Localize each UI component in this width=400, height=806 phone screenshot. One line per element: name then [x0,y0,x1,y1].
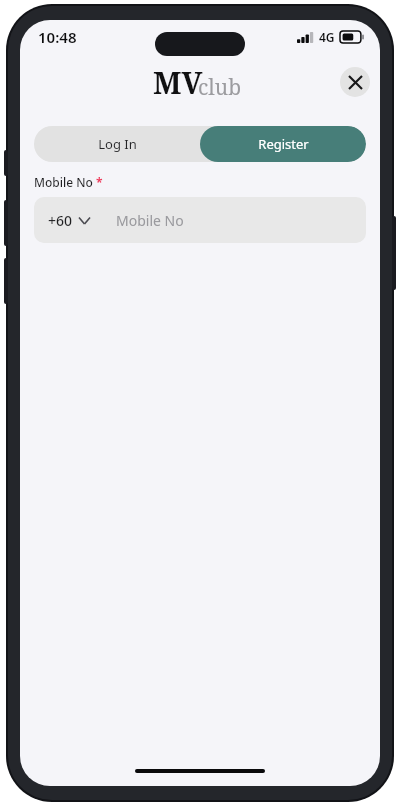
button[interactable]: Mobile No [116,197,366,243]
staticText: club [198,73,242,102]
staticText: Log In [98,135,137,153]
staticText: * [96,174,103,190]
staticText: Mobile No [34,174,93,190]
staticText: +60 [48,211,73,230]
staticText: MV [153,62,203,103]
staticText: 4G [319,29,335,45]
staticText: Register [258,135,309,153]
button[interactable]: Register [200,126,366,162]
staticText: 10:48 [38,27,77,47]
button[interactable]: Log In [34,126,200,162]
staticText: Mobile No [116,211,184,230]
button[interactable]: +60 [48,211,90,230]
button[interactable]: Close [340,67,370,97]
